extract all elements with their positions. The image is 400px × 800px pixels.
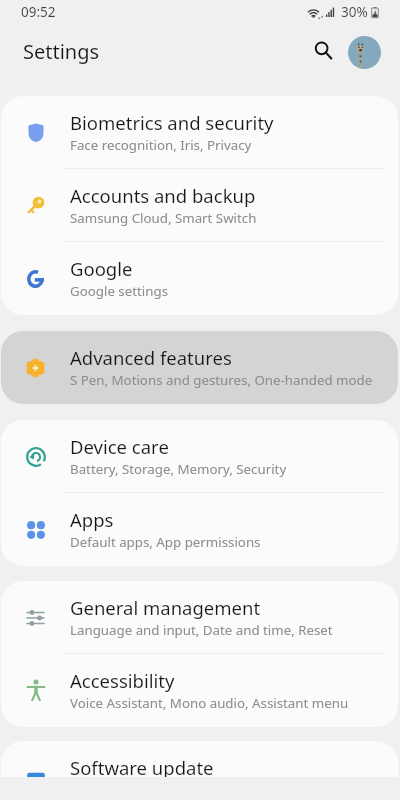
staticText: Voice Assistant, Mono audio, Assistant m… xyxy=(70,694,349,712)
button[interactable]: Apps xyxy=(1,493,398,566)
button[interactable]: Accounts and backup xyxy=(1,169,398,242)
button[interactable]: Advanced features xyxy=(1,331,398,404)
button[interactable]: Software update xyxy=(1,741,398,800)
staticText: Advanced features xyxy=(70,345,232,370)
staticText: Google xyxy=(70,256,133,281)
button[interactable]: Google xyxy=(1,242,398,315)
staticText: Battery, Storage, Memory, Security xyxy=(70,460,287,478)
staticText: Face recognition, Iris, Privacy xyxy=(70,136,252,154)
button[interactable]: Search xyxy=(306,33,340,67)
staticText: Device care xyxy=(70,434,169,459)
button[interactable]: Profile xyxy=(348,36,381,69)
staticText: General management xyxy=(70,595,261,620)
button[interactable]: Accessibility xyxy=(1,654,398,727)
staticText: Samsung Cloud, Smart Switch xyxy=(70,209,257,227)
staticText: 09:52 xyxy=(21,3,56,21)
staticText: Default apps, App permissions xyxy=(70,533,261,551)
staticText: Accessibility xyxy=(70,668,175,693)
staticText: Settings xyxy=(23,38,100,65)
staticText: S Pen, Motions and gestures, One-handed … xyxy=(70,371,373,389)
staticText: Biometrics and security xyxy=(70,110,274,135)
staticText: Apps xyxy=(70,507,114,532)
button[interactable]: Biometrics and security xyxy=(1,96,398,169)
button[interactable]: Device care xyxy=(1,420,398,493)
button[interactable]: General management xyxy=(1,581,398,654)
staticText: Software update xyxy=(70,755,214,780)
staticText: 30% xyxy=(341,3,368,21)
staticText: Accounts and backup xyxy=(70,183,256,208)
staticText: Language and input, Date and time, Reset xyxy=(70,621,333,639)
staticText: Google settings xyxy=(70,282,168,300)
